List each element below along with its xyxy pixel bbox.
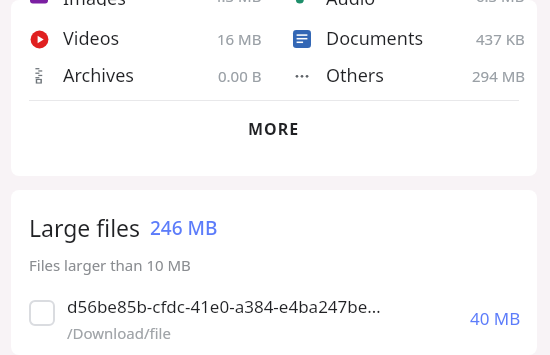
button[interactable]: MORE bbox=[11, 101, 537, 156]
staticText: Images bbox=[63, 0, 126, 6]
staticText: 4.3 MB bbox=[213, 0, 262, 6]
staticText: 437 KB bbox=[476, 29, 525, 49]
staticText: Large files bbox=[29, 212, 141, 243]
staticText: 294 MB bbox=[472, 66, 525, 86]
staticText: Archives bbox=[63, 63, 134, 88]
button[interactable]: Documents bbox=[274, 20, 537, 57]
staticText: d56be85b-cfdc-41e0-a384-e4ba247be… bbox=[67, 295, 381, 318]
button[interactable]: Select file bbox=[11, 295, 537, 355]
button[interactable]: Archives bbox=[11, 57, 274, 94]
staticText: Documents bbox=[326, 26, 424, 51]
other: Select file bbox=[29, 300, 55, 326]
button[interactable]: Images bbox=[11, 0, 274, 6]
staticText: Audio bbox=[326, 0, 376, 6]
staticText: Files larger than 10 MB bbox=[29, 255, 191, 275]
staticText: 40 MB bbox=[470, 307, 521, 330]
button[interactable]: Audio bbox=[274, 0, 537, 6]
staticText: 6.3 MB bbox=[476, 0, 525, 6]
button[interactable]: Others bbox=[274, 57, 537, 94]
staticText: 246 MB bbox=[150, 215, 218, 241]
staticText: /Download/file bbox=[67, 323, 171, 343]
staticText: Others bbox=[326, 63, 384, 88]
staticText: 16 MB bbox=[217, 29, 262, 49]
staticText: Videos bbox=[63, 26, 120, 51]
button[interactable]: Videos bbox=[11, 20, 274, 57]
staticText: MORE bbox=[248, 118, 300, 140]
staticText: 0.00 B bbox=[218, 66, 262, 86]
